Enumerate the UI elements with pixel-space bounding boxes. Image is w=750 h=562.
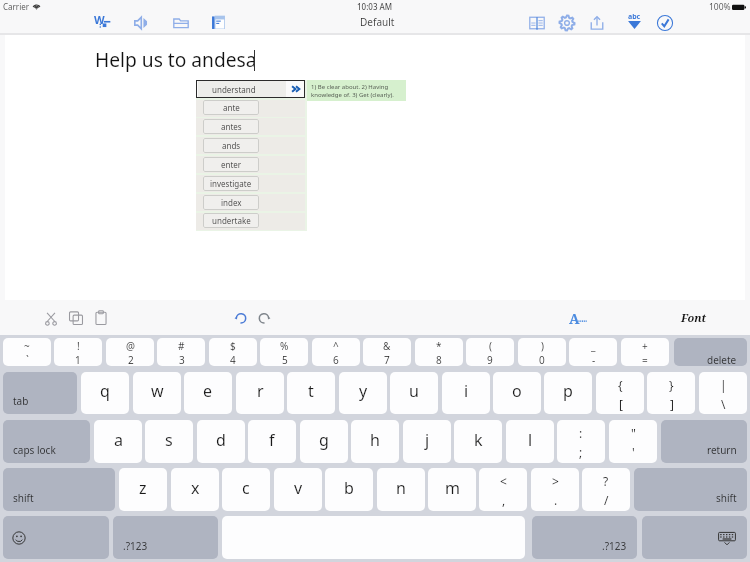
button[interactable]: l <box>506 420 554 463</box>
button[interactable]: @ <box>106 338 154 366</box>
button[interactable]: { <box>596 372 644 414</box>
button[interactable]: undertake <box>203 213 259 228</box>
button[interactable]: y <box>339 372 387 414</box>
button[interactable]: ~ <box>3 338 51 366</box>
button[interactable]: delete <box>674 338 747 366</box>
button[interactable]: n <box>377 468 425 511</box>
staticText: t <box>308 380 314 402</box>
button[interactable]: Dictionary <box>209 13 228 32</box>
button[interactable]: u <box>390 372 438 414</box>
button[interactable]: i <box>442 372 490 414</box>
button[interactable]: } <box>647 372 695 414</box>
staticText: ~ <box>24 339 30 353</box>
button[interactable]: > <box>531 468 579 511</box>
button[interactable]: t <box>287 372 335 414</box>
button[interactable]: enter <box>203 157 259 172</box>
button[interactable]: x <box>171 468 219 511</box>
button[interactable]: * <box>415 338 463 366</box>
staticText: % <box>280 339 289 353</box>
button[interactable]: f <box>248 420 296 463</box>
button[interactable]: ante <box>203 100 259 115</box>
button[interactable]: ands <box>203 138 259 153</box>
staticText: ( <box>489 339 492 353</box>
staticText: p <box>563 380 573 402</box>
button[interactable]: ? <box>582 468 630 511</box>
button[interactable]: " <box>609 420 657 463</box>
button[interactable]: + <box>621 338 669 366</box>
button[interactable]: j <box>403 420 451 463</box>
button[interactable]: understand <box>197 81 304 97</box>
button[interactable]: Paste <box>92 309 110 327</box>
button[interactable]: Text format <box>568 308 588 328</box>
button[interactable]: antes <box>203 119 259 134</box>
staticText: ^ <box>333 339 339 353</box>
button[interactable]: ) <box>518 338 566 366</box>
button[interactable]: Speak <box>133 14 151 32</box>
button[interactable]: v <box>274 468 322 511</box>
button[interactable]: Undo <box>232 309 250 327</box>
staticText: undertake <box>212 215 251 226</box>
button[interactable]: _ <box>569 338 617 366</box>
button[interactable]: | <box>699 372 747 414</box>
button[interactable]: d <box>197 420 245 463</box>
button[interactable]: keyboard key <box>3 516 109 559</box>
button[interactable]: % <box>260 338 308 366</box>
button[interactable]: m <box>428 468 476 511</box>
button[interactable]: b <box>325 468 373 511</box>
button[interactable]: Spell check <box>625 13 644 32</box>
button[interactable]: o <box>493 372 541 414</box>
button[interactable]: Settings <box>558 14 576 32</box>
staticText: y <box>359 380 368 402</box>
staticText: r <box>257 380 264 402</box>
button[interactable]: & <box>363 338 411 366</box>
button[interactable]: < <box>479 468 527 511</box>
button[interactable]: k <box>454 420 502 463</box>
staticText: w <box>151 380 164 402</box>
button[interactable]: z <box>119 468 167 511</box>
staticText: ? <box>603 473 609 489</box>
button[interactable]: .?123 <box>113 516 218 559</box>
button[interactable]: Word prediction <box>94 13 113 32</box>
button[interactable]: ! <box>54 338 102 366</box>
button[interactable]: a <box>94 420 142 463</box>
button[interactable]: Read aloud <box>528 14 546 32</box>
button[interactable]: q <box>81 372 129 414</box>
button[interactable]: r <box>236 372 284 414</box>
button[interactable]: Font <box>679 308 709 327</box>
button[interactable]: Cut <box>42 309 60 327</box>
button[interactable]: ^ <box>312 338 360 366</box>
button[interactable]: shift <box>3 468 115 511</box>
button[interactable]: p <box>544 372 592 414</box>
button[interactable]: g <box>300 420 348 463</box>
staticText: , <box>502 492 506 508</box>
button[interactable]: ( <box>466 338 514 366</box>
button[interactable]: caps lock <box>3 420 90 463</box>
staticText: s <box>165 429 173 451</box>
button[interactable]: return <box>661 420 747 463</box>
button[interactable]: s <box>145 420 193 463</box>
staticText: Default <box>360 15 395 29</box>
button[interactable]: h <box>351 420 399 463</box>
button[interactable]: w <box>133 372 181 414</box>
button[interactable]: Grammar check <box>656 14 674 32</box>
button[interactable]: tab <box>3 372 77 414</box>
button[interactable]: Documents <box>172 14 190 32</box>
staticText: 6 <box>333 353 339 366</box>
button[interactable]: Redo <box>255 309 273 327</box>
button[interactable]: e <box>184 372 232 414</box>
button[interactable]: Share <box>588 14 606 32</box>
button[interactable]: index <box>203 195 259 210</box>
button[interactable]: $ <box>209 338 257 366</box>
button[interactable]: investigate <box>203 176 259 191</box>
button[interactable]: # <box>157 338 205 366</box>
button[interactable]: .?123 <box>532 516 637 559</box>
button[interactable]: : <box>557 420 605 463</box>
button[interactable]: keyboard key <box>642 516 747 559</box>
button[interactable]: shift <box>634 468 747 511</box>
button[interactable]: Copy <box>67 309 85 327</box>
staticText: _ <box>591 339 596 353</box>
staticText: shift <box>716 491 737 505</box>
staticText: c <box>242 477 250 499</box>
button[interactable]: c <box>222 468 270 511</box>
